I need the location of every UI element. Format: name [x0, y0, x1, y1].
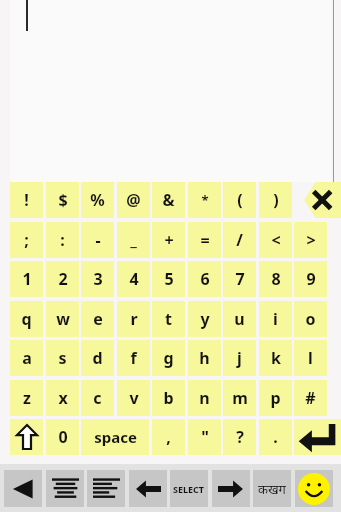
- staticText: g: [163, 347, 174, 369]
- button[interactable]: n: [188, 380, 221, 416]
- button[interactable]: space: [81, 419, 149, 455]
- button[interactable]: k: [259, 340, 292, 376]
- button[interactable]: Move right: [212, 470, 250, 507]
- button[interactable]: SELECT: [170, 470, 208, 507]
- button[interactable]: v: [117, 380, 150, 416]
- button[interactable]: :: [46, 222, 79, 258]
- button[interactable]: -: [81, 222, 114, 258]
- button[interactable]: $: [46, 182, 79, 218]
- button[interactable]: 1: [10, 261, 43, 297]
- button[interactable]: ): [259, 182, 292, 218]
- staticText: k: [271, 347, 281, 369]
- button[interactable]: w: [46, 301, 79, 337]
- button[interactable]: 6: [188, 261, 221, 297]
- button[interactable]: ,: [152, 419, 185, 455]
- button[interactable]: o: [294, 301, 327, 337]
- button[interactable]: 9: [294, 261, 327, 297]
- button[interactable]: 3: [81, 261, 114, 297]
- button[interactable]: a: [10, 340, 43, 376]
- button[interactable]: Move left: [129, 470, 167, 507]
- button[interactable]: _: [117, 222, 150, 258]
- button[interactable]: !: [10, 182, 43, 218]
- button[interactable]: ?: [223, 419, 256, 455]
- button[interactable]: Previous: [4, 470, 42, 507]
- staticText: c: [93, 387, 102, 409]
- button[interactable]: (: [223, 182, 256, 218]
- staticText: 1: [22, 268, 32, 290]
- staticText: v: [129, 387, 139, 409]
- button[interactable]: Enter: [294, 419, 341, 455]
- button[interactable]: m: [223, 380, 256, 416]
- staticText: !: [24, 189, 29, 211]
- button[interactable]: #: [294, 380, 327, 416]
- staticText: i: [273, 308, 278, 330]
- button[interactable]: c: [81, 380, 114, 416]
- button[interactable]: 0: [46, 419, 79, 455]
- button[interactable]: h: [188, 340, 221, 376]
- button[interactable]: Align left: [87, 470, 125, 507]
- button[interactable]: *: [188, 182, 221, 218]
- button[interactable]: +: [152, 222, 185, 258]
- staticText: n: [199, 387, 210, 409]
- button[interactable]: ;: [10, 222, 43, 258]
- staticText: :: [60, 229, 65, 251]
- button[interactable]: 7: [223, 261, 256, 297]
- staticText: 2: [58, 268, 68, 290]
- staticText: (: [237, 189, 243, 211]
- button[interactable]: /: [223, 222, 256, 258]
- button[interactable]: j: [223, 340, 256, 376]
- button[interactable]: <: [259, 222, 292, 258]
- button[interactable]: =: [188, 222, 221, 258]
- button[interactable]: &: [152, 182, 185, 218]
- staticText: a: [22, 347, 32, 369]
- button[interactable]: 2: [46, 261, 79, 297]
- button[interactable]: t: [152, 301, 185, 337]
- staticText: z: [23, 387, 31, 409]
- button[interactable]: z: [10, 380, 43, 416]
- button[interactable]: d: [81, 340, 114, 376]
- button[interactable]: g: [152, 340, 185, 376]
- staticText: /: [236, 229, 243, 251]
- staticText: 3: [93, 268, 103, 290]
- button[interactable]: 5: [152, 261, 185, 297]
- staticText: $: [58, 189, 68, 211]
- staticText: p: [270, 387, 281, 409]
- button[interactable]: [10, 0, 331, 182]
- staticText: ;: [24, 229, 29, 251]
- staticText: h: [199, 347, 210, 369]
- button[interactable]: x: [46, 380, 79, 416]
- button[interactable]: i: [259, 301, 292, 337]
- staticText: .: [273, 426, 278, 448]
- button[interactable]: Backspace: [294, 182, 341, 218]
- staticText: 8: [271, 268, 281, 290]
- button[interactable]: Align center: [46, 470, 84, 507]
- button[interactable]: e: [81, 301, 114, 337]
- button[interactable]: u: [223, 301, 256, 337]
- staticText: x: [58, 387, 68, 409]
- staticText: &: [162, 189, 175, 211]
- staticText: b: [163, 387, 174, 409]
- button[interactable]: @: [117, 182, 150, 218]
- button[interactable]: f: [117, 340, 150, 376]
- staticText: ": [201, 426, 209, 448]
- button[interactable]: l: [294, 340, 327, 376]
- button[interactable]: %: [81, 182, 114, 218]
- button[interactable]: कखग: [253, 470, 291, 507]
- button[interactable]: Emoji: [295, 470, 333, 507]
- staticText: r: [130, 308, 138, 330]
- button[interactable]: q: [10, 301, 43, 337]
- button[interactable]: r: [117, 301, 150, 337]
- button[interactable]: 8: [259, 261, 292, 297]
- button[interactable]: b: [152, 380, 185, 416]
- staticText: space: [94, 427, 137, 447]
- button[interactable]: 4: [117, 261, 150, 297]
- button[interactable]: Shift: [10, 419, 43, 455]
- button[interactable]: >: [294, 222, 327, 258]
- staticText: d: [92, 347, 103, 369]
- staticText: SELECT: [173, 483, 205, 495]
- button[interactable]: .: [259, 419, 292, 455]
- button[interactable]: p: [259, 380, 292, 416]
- button[interactable]: s: [46, 340, 79, 376]
- button[interactable]: y: [188, 301, 221, 337]
- button[interactable]: ": [188, 419, 221, 455]
